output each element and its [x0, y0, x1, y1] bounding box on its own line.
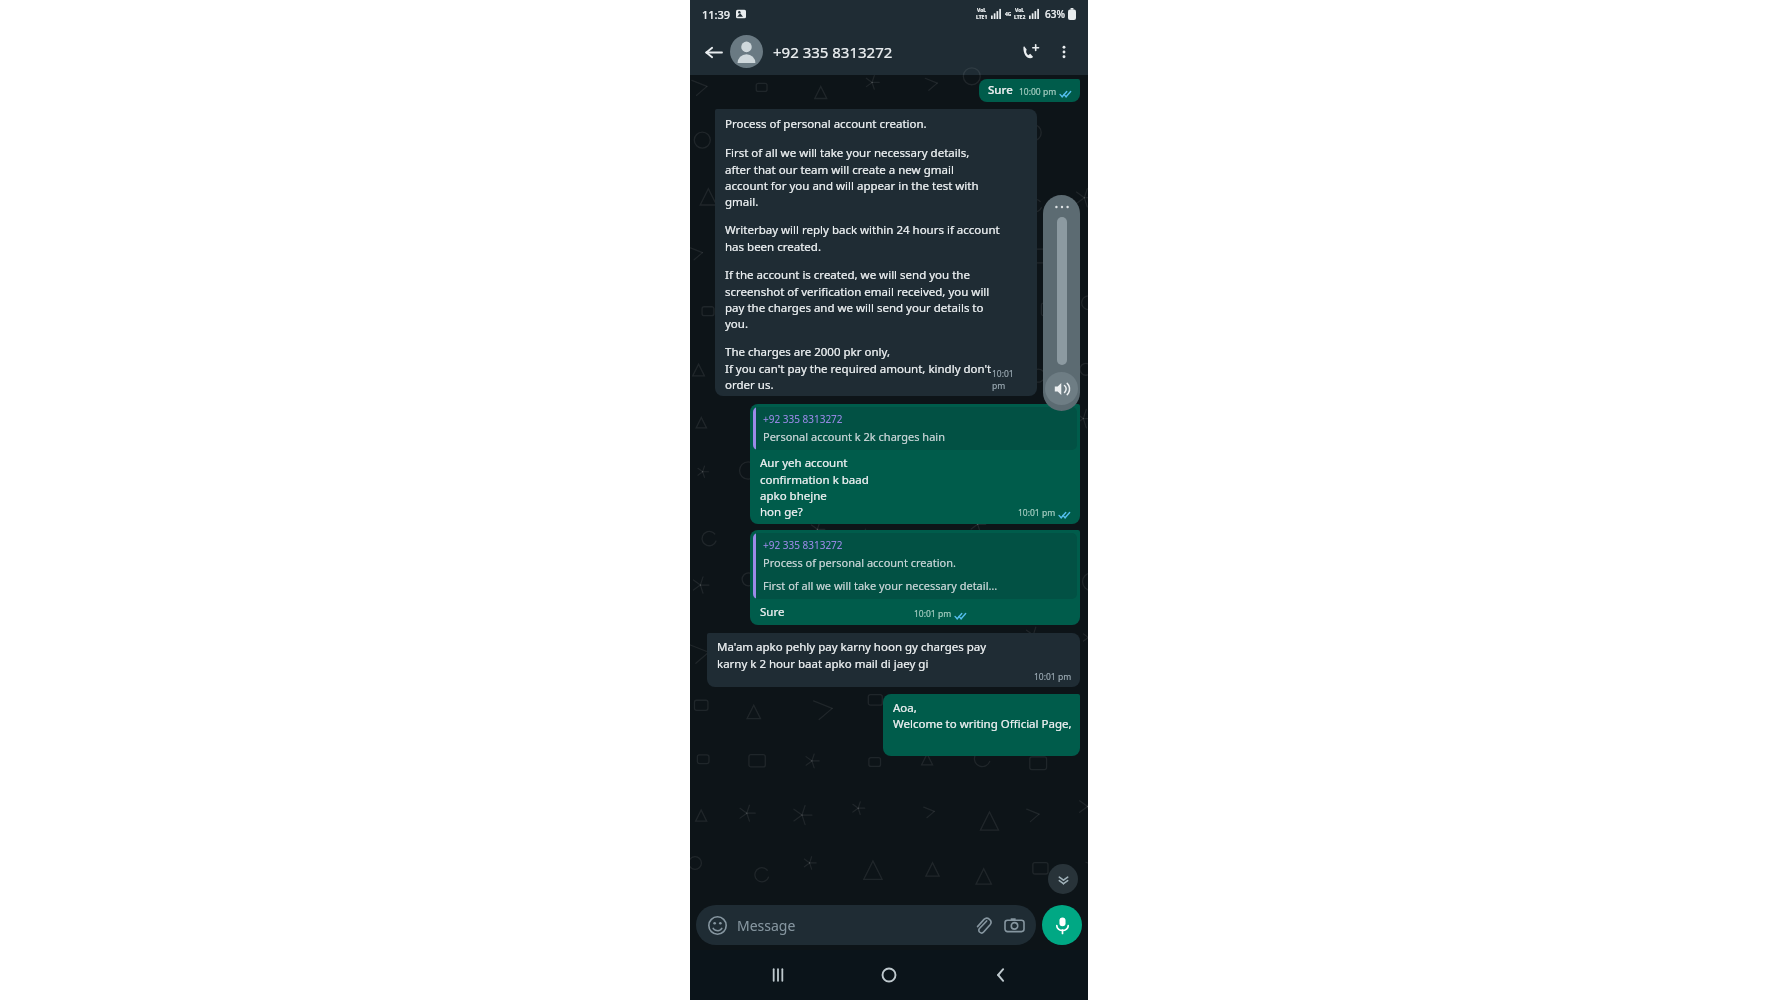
button[interactable]: Video call [1014, 35, 1048, 69]
staticText: 10:01 pm [1018, 507, 1056, 519]
button[interactable]: Emoji [696, 905, 1036, 945]
staticText: Process of personal account creation. [763, 555, 956, 570]
staticText: 10:01 pm [914, 608, 952, 620]
staticText: Aoa, [893, 700, 917, 716]
button[interactable]: Ma'am apko pehly pay karny hoon gy charg… [707, 633, 1080, 687]
staticText: 11:39 [702, 7, 731, 22]
staticText: 63% [1045, 7, 1065, 21]
staticText: First of all we will take your necessary… [763, 578, 998, 593]
button[interactable]: Contact photo [730, 35, 763, 68]
button[interactable]: Home [865, 951, 913, 999]
button[interactable]: +92 335 8313272 [750, 530, 1080, 625]
button[interactable]: Scroll to bottom [1048, 864, 1078, 894]
staticText: Sure [760, 604, 785, 620]
staticText: +92 335 8313272 [773, 42, 893, 62]
staticText: If the account is created, we will send … [725, 267, 990, 331]
button[interactable]: Attach [970, 913, 994, 937]
staticText: LTE2 [1014, 14, 1026, 21]
staticText: First of all we will take your necessary… [725, 145, 979, 209]
staticText: Process of personal account creation. [725, 116, 927, 132]
staticText: The charges are 2000 pkr only, If you ca… [725, 344, 992, 392]
button[interactable]: +92 335 8313272 [750, 404, 1080, 524]
staticText: Aur yeh account confirmation k baad apko… [760, 455, 889, 519]
staticText: 10:01 pm [1034, 671, 1072, 683]
staticText: Welcome to writing Official Page, [893, 716, 1072, 732]
staticText: +92 335 8313272 [763, 538, 843, 552]
staticText: +92 335 8313272 [763, 412, 843, 426]
staticText: Ma'am apko pehly pay karny hoon gy charg… [717, 639, 987, 671]
staticText: Writerbay will reply back within 24 hour… [725, 222, 1000, 254]
button[interactable]: Process of personal account creation. [715, 109, 1037, 396]
button[interactable]: Recents [754, 951, 802, 999]
staticText: LTE1 [976, 14, 988, 21]
staticText: 10:01 pm [992, 368, 1029, 392]
staticText: Sure [988, 82, 1013, 98]
button[interactable]: Aoa, [883, 694, 1080, 756]
button[interactable]: Emoji [706, 914, 728, 936]
button[interactable]: Camera [1002, 913, 1026, 937]
button[interactable]: Volume [1043, 195, 1080, 411]
staticText: 4G [1005, 11, 1012, 18]
button[interactable]: +92 335 8313272 [773, 42, 1014, 62]
button[interactable]: Back [698, 37, 728, 67]
button[interactable]: Back [977, 951, 1025, 999]
staticText: Personal account k 2k charges hain [763, 429, 945, 444]
staticText: 10:00 pm [1019, 86, 1057, 98]
button[interactable]: More options [1048, 36, 1080, 68]
button[interactable]: Voice message [1042, 905, 1082, 945]
staticText: Message [737, 916, 970, 935]
staticText: VoL [977, 7, 987, 14]
button[interactable]: Sure [979, 79, 1080, 102]
button[interactable]: Volume [1045, 372, 1078, 405]
staticText: VoL [1015, 7, 1025, 14]
